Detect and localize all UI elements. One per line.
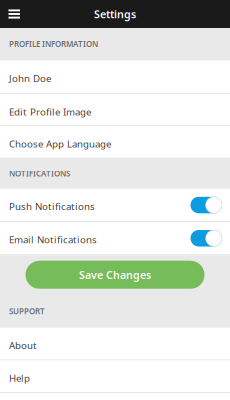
staticText: Push Notifications [9, 200, 95, 213]
button[interactable]: Email Notifications [0, 222, 230, 254]
button[interactable]: Push Notifications [0, 189, 230, 221]
staticText: John Doe [9, 72, 51, 85]
staticText: NOTIFICATIONS [9, 168, 70, 179]
staticText: PROFILE INFORMATION [9, 39, 98, 49]
staticText: About [9, 339, 37, 352]
staticText: Choose App Language [9, 137, 111, 150]
button[interactable]: Menu [2, 0, 26, 28]
staticText: SUPPORT [9, 306, 45, 316]
button[interactable]: Help [0, 360, 230, 392]
staticText: Help [9, 371, 30, 384]
staticText: Settings [94, 7, 136, 21]
button[interactable]: John Doe [0, 61, 230, 93]
button[interactable]: Edit Profile Image [0, 94, 230, 125]
button[interactable]: Choose App Language [0, 126, 230, 158]
staticText: Save Changes [79, 268, 151, 282]
staticText: Edit Profile Image [9, 105, 91, 118]
staticText: Email Notifications [9, 233, 97, 246]
button[interactable]: Save Changes [25, 261, 204, 289]
button[interactable]: About [0, 328, 230, 360]
